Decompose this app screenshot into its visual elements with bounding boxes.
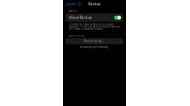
- staticText: ‹: [65, 1, 67, 7]
- staticText: BACKUP: [69, 10, 77, 13]
- staticText: Automatically back up data such as accou…: [69, 23, 120, 30]
- button[interactable]: ‹: [63, 0, 83, 8]
- staticText: BACK UP NOW: [69, 35, 85, 37]
- staticText: iCloud Backup: [69, 16, 92, 19]
- staticText: Estimating time remaining…: [79, 46, 109, 48]
- staticText: Apple ID: [68, 3, 81, 6]
- button[interactable]: Backing Up…: [66, 38, 123, 44]
- staticText: Backing Up…: [84, 39, 105, 43]
- button[interactable]: iCloud Backup: [66, 13, 123, 22]
- staticText: Backup: [88, 3, 100, 6]
